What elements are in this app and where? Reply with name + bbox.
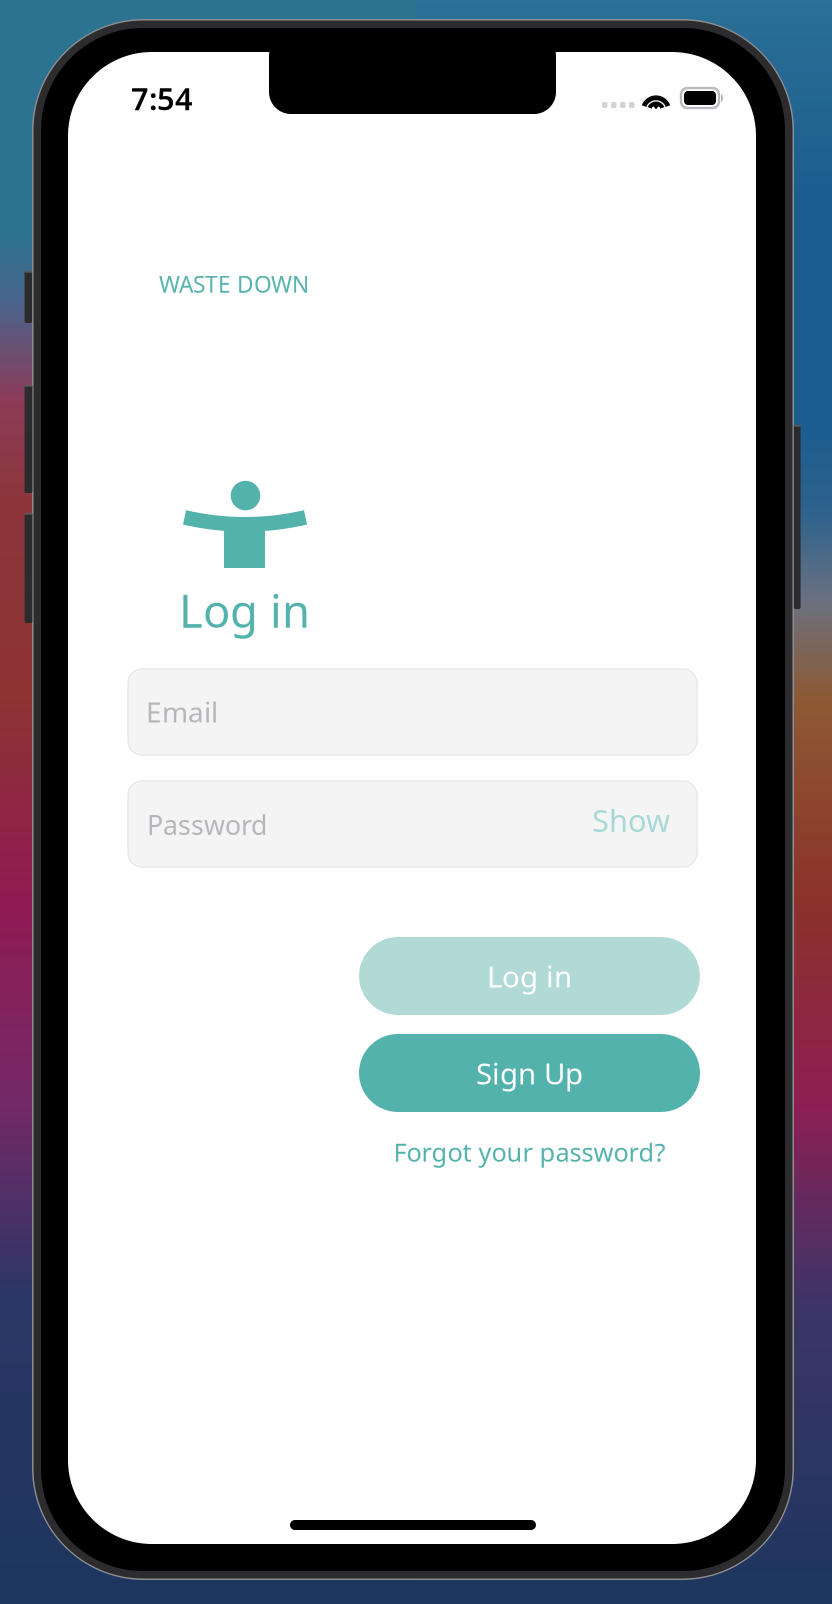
staticText: 7:54 [131,78,193,119]
staticText: Forgot your password? [393,1135,665,1169]
button[interactable] [128,781,697,867]
staticText: Password [147,807,267,842]
staticText: Email [146,693,218,730]
button[interactable]: Forgot your password? [359,1130,700,1174]
button[interactable]: Sign Up [359,1034,700,1112]
staticText: Log in [179,580,310,640]
staticText: Show [592,800,670,840]
staticText: Log in [487,956,572,995]
button[interactable] [128,669,697,755]
staticText: Sign Up [476,1053,583,1092]
button[interactable]: Log in [359,937,700,1015]
button[interactable]: Show [588,790,674,850]
staticText: WASTE DOWN [159,269,309,299]
